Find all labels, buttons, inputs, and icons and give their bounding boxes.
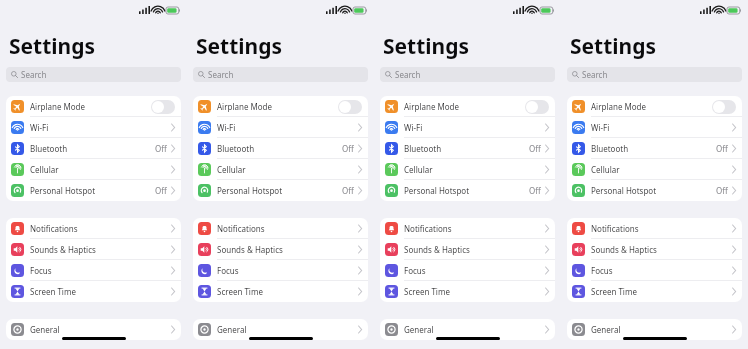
button[interactable]: Airplane Mode (567, 96, 742, 117)
staticText: Wi-Fi (30, 122, 49, 133)
staticText: Off (155, 143, 167, 154)
button[interactable]: Screen Time (380, 281, 555, 302)
staticText: General (404, 324, 434, 335)
button[interactable]: Bluetooth (380, 138, 555, 159)
staticText: Off (529, 143, 541, 154)
button[interactable]: Cellular (193, 159, 368, 180)
button[interactable]: Personal Hotspot (6, 180, 181, 201)
staticText: Search (208, 69, 234, 80)
button[interactable]: Cellular (6, 159, 181, 180)
button[interactable]: Notifications (6, 218, 181, 239)
button[interactable]: Personal Hotspot (380, 180, 555, 201)
staticText: Airplane Mode (404, 101, 460, 112)
staticText: Bluetooth (404, 143, 442, 154)
staticText: Focus (217, 265, 239, 276)
staticText: Wi-Fi (591, 122, 610, 133)
staticText: Search (21, 69, 47, 80)
button[interactable]: Screen Time (6, 281, 181, 302)
button[interactable]: Airplane Mode (193, 96, 368, 117)
staticText: Notifications (404, 223, 452, 234)
button[interactable]: Focus (6, 260, 181, 281)
staticText: General (30, 324, 60, 335)
staticText: Bluetooth (30, 143, 68, 154)
button[interactable]: Bluetooth (6, 138, 181, 159)
staticText: Screen Time (404, 286, 450, 297)
button[interactable]: Sounds & Haptics (6, 239, 181, 260)
button[interactable]: General (380, 319, 555, 340)
button[interactable]: Focus (193, 260, 368, 281)
staticText: Sounds & Haptics (591, 244, 657, 255)
staticText: General (217, 324, 247, 335)
staticText: Cellular (217, 164, 246, 175)
button[interactable]: Screen Time (567, 281, 742, 302)
button[interactable]: Airplane Mode toggle (525, 100, 549, 114)
button[interactable]: Focus (380, 260, 555, 281)
staticText: Personal Hotspot (591, 185, 657, 196)
staticText: Focus (30, 265, 52, 276)
button[interactable]: Search (6, 67, 181, 82)
button[interactable]: Personal Hotspot (193, 180, 368, 201)
button[interactable]: Notifications (380, 218, 555, 239)
staticText: Sounds & Haptics (404, 244, 470, 255)
staticText: Settings (383, 32, 470, 61)
button[interactable]: Cellular (380, 159, 555, 180)
staticText: Wi-Fi (217, 122, 236, 133)
staticText: Airplane Mode (217, 101, 273, 112)
button[interactable]: Wi-Fi (380, 117, 555, 138)
button[interactable]: Sounds & Haptics (567, 239, 742, 260)
button[interactable]: Bluetooth (567, 138, 742, 159)
button[interactable]: Search (380, 67, 555, 82)
button[interactable]: Bluetooth (193, 138, 368, 159)
staticText: Focus (404, 265, 426, 276)
button[interactable]: Cellular (567, 159, 742, 180)
staticText: Airplane Mode (30, 101, 86, 112)
button[interactable]: Personal Hotspot (567, 180, 742, 201)
staticText: Search (395, 69, 421, 80)
button[interactable]: Wi-Fi (193, 117, 368, 138)
button[interactable]: Airplane Mode toggle (338, 100, 362, 114)
button[interactable]: Focus (567, 260, 742, 281)
staticText: Off (529, 185, 541, 196)
staticText: Off (342, 143, 354, 154)
staticText: Screen Time (591, 286, 637, 297)
staticText: Screen Time (217, 286, 263, 297)
button[interactable]: Screen Time (193, 281, 368, 302)
staticText: Airplane Mode (591, 101, 647, 112)
button[interactable]: Search (567, 67, 742, 82)
button[interactable]: Wi-Fi (6, 117, 181, 138)
staticText: Bluetooth (591, 143, 629, 154)
staticText: Sounds & Haptics (217, 244, 283, 255)
staticText: Notifications (217, 223, 265, 234)
staticText: Off (716, 185, 728, 196)
staticText: Off (155, 185, 167, 196)
button[interactable]: Airplane Mode (6, 96, 181, 117)
staticText: Personal Hotspot (404, 185, 470, 196)
button[interactable]: Search (193, 67, 368, 82)
button[interactable]: General (193, 319, 368, 340)
staticText: Focus (591, 265, 613, 276)
button[interactable]: General (6, 319, 181, 340)
staticText: Wi-Fi (404, 122, 423, 133)
button[interactable]: Notifications (193, 218, 368, 239)
button[interactable]: Airplane Mode (380, 96, 555, 117)
button[interactable]: Airplane Mode toggle (712, 100, 736, 114)
staticText: Bluetooth (217, 143, 255, 154)
button[interactable]: General (567, 319, 742, 340)
button[interactable]: Wi-Fi (567, 117, 742, 138)
button[interactable]: Airplane Mode toggle (151, 100, 175, 114)
staticText: Cellular (30, 164, 59, 175)
button[interactable]: Notifications (567, 218, 742, 239)
button[interactable]: Sounds & Haptics (380, 239, 555, 260)
staticText: Notifications (30, 223, 78, 234)
staticText: Search (582, 69, 608, 80)
staticText: Cellular (404, 164, 433, 175)
staticText: Settings (9, 32, 96, 61)
staticText: Personal Hotspot (30, 185, 96, 196)
staticText: Screen Time (30, 286, 76, 297)
staticText: Off (342, 185, 354, 196)
staticText: Personal Hotspot (217, 185, 283, 196)
staticText: Notifications (591, 223, 639, 234)
staticText: Settings (196, 32, 283, 61)
staticText: Off (716, 143, 728, 154)
button[interactable]: Sounds & Haptics (193, 239, 368, 260)
